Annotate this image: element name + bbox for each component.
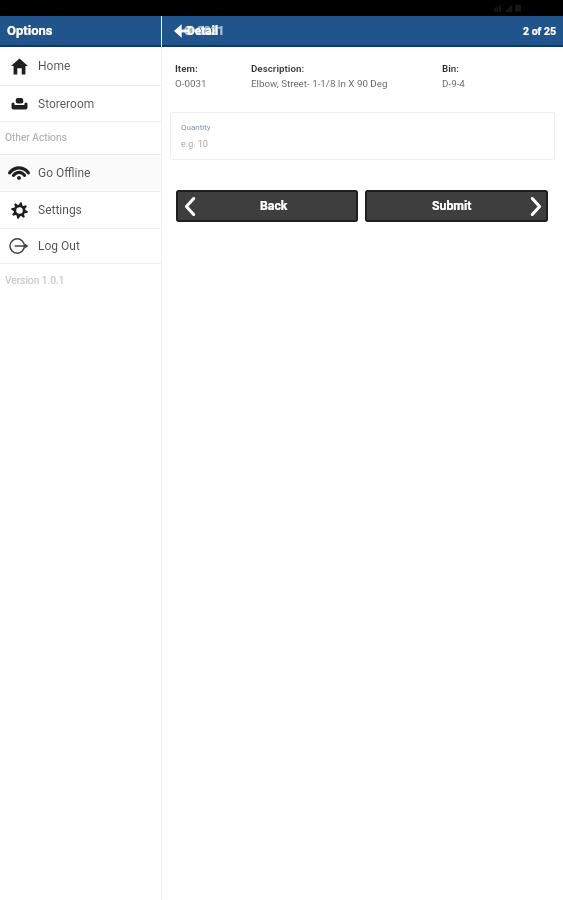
button[interactable]: Storeroom — [0, 86, 161, 121]
button[interactable]: Back — [174, 24, 188, 38]
button[interactable]: Home — [0, 47, 161, 85]
staticText: O-0031 — [175, 78, 207, 89]
button[interactable]: Quantity — [170, 112, 555, 160]
staticText: Other Actions — [5, 132, 67, 144]
staticText: Home — [38, 59, 71, 73]
staticText: Go Offline — [38, 166, 91, 180]
staticText: Item: — [175, 63, 198, 74]
button[interactable]: Submit — [365, 190, 548, 222]
staticText: Settings — [38, 203, 82, 217]
staticText: Storeroom — [38, 97, 95, 111]
button[interactable]: Back — [176, 190, 358, 222]
staticText: 2 of 25 — [523, 25, 557, 37]
staticText: Bin: — [442, 63, 460, 74]
staticText: D-9-4 — [442, 78, 465, 89]
staticText: Elbow, Street- 1-1/8 In X 90 Deg — [251, 78, 388, 89]
staticText: Description: — [251, 63, 305, 74]
staticText: Options — [7, 23, 53, 38]
staticText: Submit — [432, 199, 472, 213]
staticText: Version 1.0.1 — [5, 275, 65, 287]
staticText: e.g. 10 — [181, 139, 208, 150]
staticText: Log Out — [38, 239, 80, 253]
staticText: Quantity — [181, 123, 211, 132]
button[interactable]: Go Offline — [0, 155, 161, 191]
staticText: Detail — [187, 24, 219, 38]
staticText: O-0031 — [184, 24, 225, 38]
staticText: Back — [260, 199, 288, 213]
button[interactable]: Log Out — [0, 229, 161, 263]
button[interactable]: Settings — [0, 192, 161, 228]
